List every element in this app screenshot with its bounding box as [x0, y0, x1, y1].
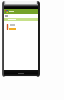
- button[interactable]: App icon: [4, 9, 38, 14]
- button[interactable]: [4, 23, 38, 31]
- other: App icon: [5, 10, 8, 13]
- button[interactable]: [4, 18, 38, 21]
